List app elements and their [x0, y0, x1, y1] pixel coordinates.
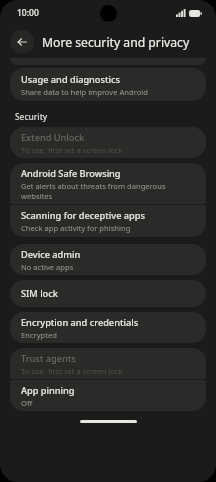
button[interactable]: Device admin: [10, 244, 206, 275]
staticText: Encryption and credentials: [21, 316, 139, 329]
button[interactable]: Android Safe Browsing: [10, 163, 206, 204]
staticText: 10:00: [17, 7, 39, 19]
staticText: Trust agents: [21, 352, 76, 365]
staticText: Encrypted: [21, 330, 57, 340]
staticText: Share data to help improve Android: [21, 87, 148, 97]
button[interactable]: Extend Unlock: [10, 127, 206, 158]
button[interactable]: Back: [10, 30, 34, 54]
staticText: Android Safe Browsing: [21, 167, 121, 180]
staticText: Get alerts about threats from dangerous …: [21, 181, 166, 201]
button[interactable]: Usage and diagnostics: [10, 68, 206, 101]
staticText: To use, first set a screen lock: [21, 366, 123, 376]
button[interactable]: Encryption and credentials: [10, 312, 206, 343]
button[interactable]: Scanning for deceptive apps: [10, 205, 206, 237]
staticText: Security: [15, 111, 48, 122]
button[interactable]: Trust agents: [10, 348, 206, 379]
staticText: App pinning: [21, 384, 75, 397]
staticText: No active apps: [21, 262, 74, 272]
staticText: SIM lock: [21, 287, 58, 300]
staticText: Extend Unlock: [21, 131, 85, 144]
staticText: Scanning for deceptive apps: [21, 209, 145, 222]
staticText: To use, first set a screen lock: [21, 145, 123, 155]
staticText: More security and privacy: [42, 34, 190, 51]
staticText: Off: [21, 398, 33, 408]
button[interactable]: App pinning: [10, 380, 206, 411]
staticText: Check app activity for phishing: [21, 223, 131, 233]
button[interactable]: SIM lock: [10, 280, 206, 307]
staticText: Usage and diagnostics: [21, 73, 120, 86]
staticText: Device admin: [21, 248, 81, 261]
